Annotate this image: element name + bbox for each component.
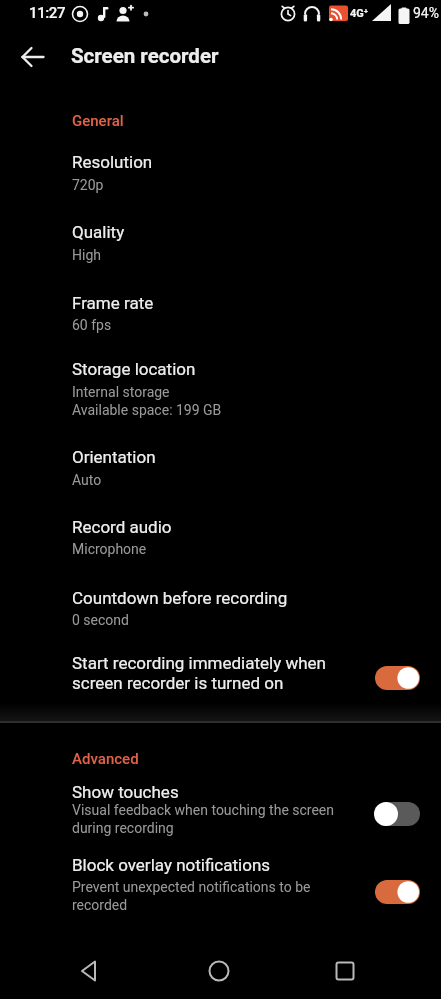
button[interactable]: Countdown before recording: [0, 578, 441, 648]
staticText: Auto: [72, 472, 372, 488]
staticText: Block overlay notifications: [72, 855, 372, 875]
button[interactable]: [375, 664, 423, 692]
staticText: 0 second: [72, 612, 372, 628]
staticText: Show touches: [72, 782, 372, 802]
staticText: Microphone: [72, 541, 372, 557]
staticText: Prevent unexpected notifications to be r…: [72, 879, 372, 913]
button[interactable]: [78, 959, 102, 983]
button[interactable]: Show touches: [0, 775, 441, 848]
staticText: 720p: [72, 177, 372, 193]
staticText: Quality: [72, 222, 372, 242]
staticText: Visual feedback when touching the screen…: [72, 802, 372, 836]
staticText: Frame rate: [72, 293, 372, 313]
button[interactable]: [375, 878, 423, 906]
staticText: 94%: [413, 5, 439, 21]
button[interactable]: Orientation: [0, 438, 441, 508]
button[interactable]: [207, 959, 231, 983]
staticText: Record audio: [72, 517, 372, 537]
button[interactable]: Block overlay notifications: [0, 848, 441, 932]
staticText: Countdown before recording: [72, 588, 372, 608]
staticText: Resolution: [72, 152, 372, 172]
staticText: Screen recorder: [71, 44, 219, 68]
staticText: Advanced: [72, 750, 139, 768]
staticText: 11:27: [29, 4, 66, 22]
button[interactable]: Quality: [0, 210, 441, 280]
button[interactable]: Storage location: [0, 350, 441, 438]
staticText: Internal storage Available space: 199 GB: [72, 384, 372, 418]
button[interactable]: Frame rate: [0, 280, 441, 350]
staticText: High: [72, 247, 372, 263]
staticText: General: [72, 112, 124, 130]
staticText: Storage location: [72, 359, 372, 379]
button[interactable]: Resolution: [0, 140, 441, 210]
button[interactable]: [375, 800, 423, 828]
staticText: 4G⁺: [350, 7, 369, 20]
staticText: Orientation: [72, 447, 372, 467]
button[interactable]: [18, 42, 48, 72]
button[interactable]: Start recording immediately when screen …: [0, 648, 441, 712]
staticText: 60 fps: [72, 317, 372, 333]
staticText: Start recording immediately when screen …: [72, 653, 372, 693]
button[interactable]: Record audio: [0, 508, 441, 578]
button[interactable]: [333, 959, 357, 983]
